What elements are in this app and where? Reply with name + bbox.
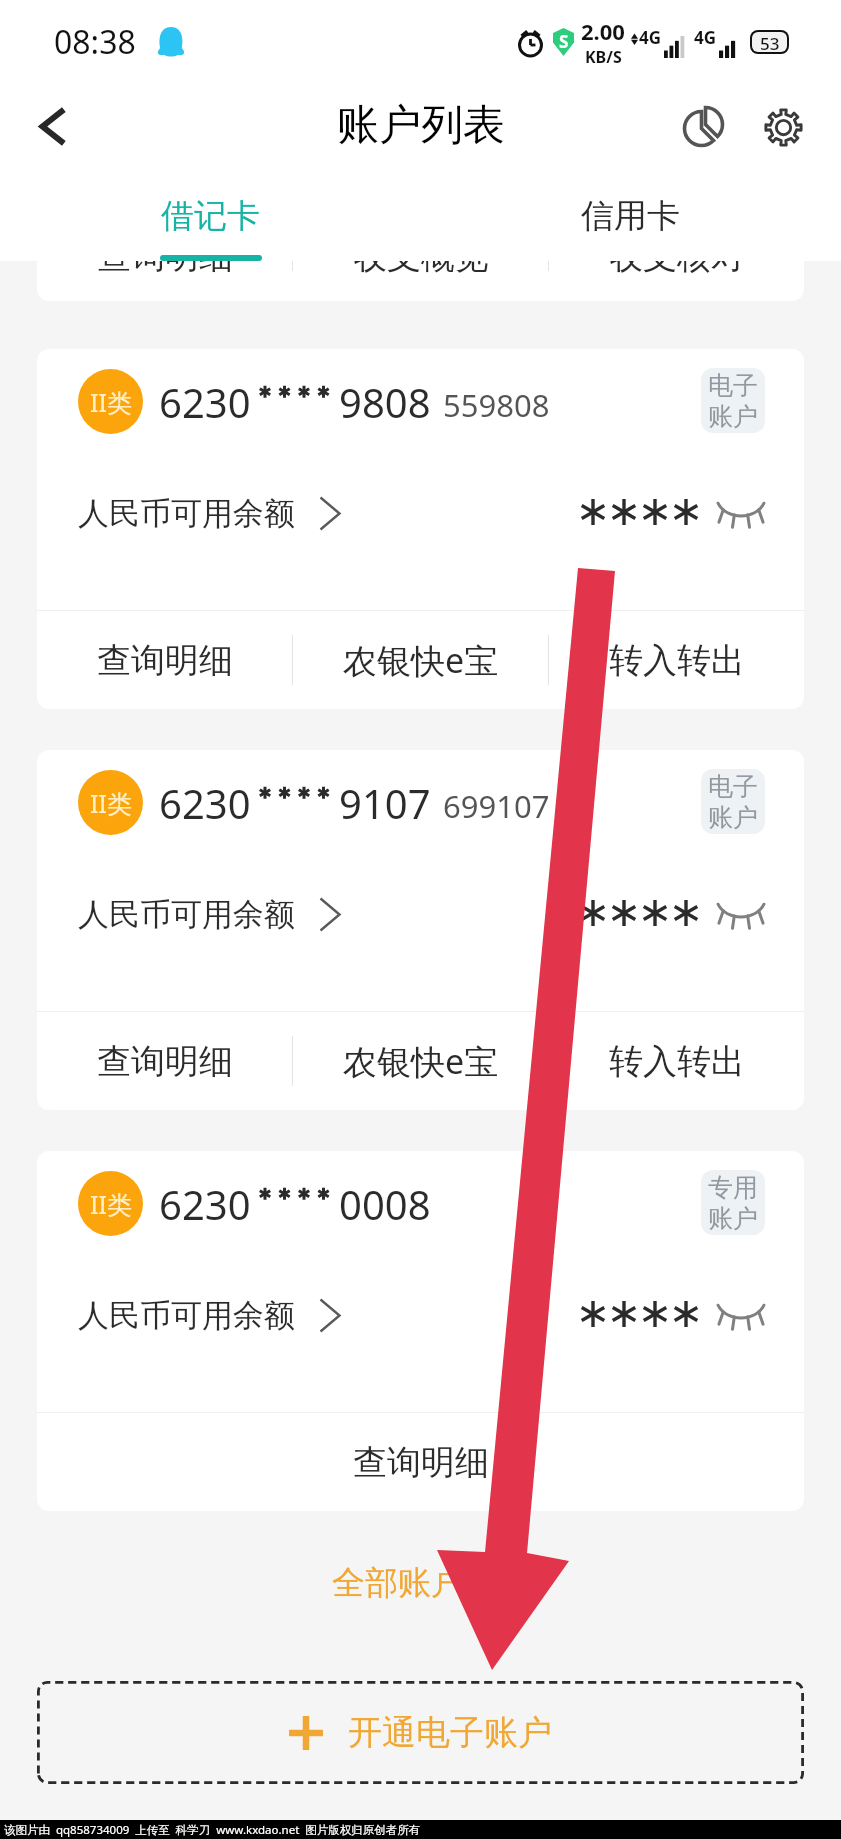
staticText: 专用	[708, 1172, 758, 1203]
staticText: KB/S	[585, 46, 622, 68]
staticText: 该图片由 qq858734009 上传至 科学刀 www.kxdao.net 图…	[4, 1822, 421, 1838]
staticText: 农银快e宝	[343, 1038, 499, 1084]
button[interactable]: 查询明细	[37, 261, 292, 301]
button[interactable]: Show balance	[577, 1294, 766, 1334]
button[interactable]: II类	[37, 1151, 804, 1511]
staticText: 账户	[708, 802, 758, 833]
staticText: 借记卡	[161, 195, 260, 237]
button[interactable]: 查询明细	[37, 1012, 292, 1110]
staticText: 4G	[694, 26, 717, 49]
staticText: II类	[90, 1187, 132, 1221]
button[interactable]: 农银快e宝	[293, 611, 548, 709]
button[interactable]: 借记卡	[0, 180, 420, 261]
staticText: 账户列表	[337, 99, 505, 152]
staticText: 农银快e宝	[343, 637, 499, 683]
staticText: 559808	[443, 384, 550, 426]
staticText: II类	[90, 786, 132, 820]
staticText: 9107	[339, 776, 431, 830]
staticText: 开通电子账户	[348, 1711, 552, 1754]
staticText: 转入转出	[609, 639, 745, 682]
staticText: 查询明细	[97, 261, 233, 275]
staticText: S	[559, 30, 569, 53]
staticText: 电子	[708, 370, 758, 401]
button[interactable]: II类	[37, 750, 804, 1110]
button[interactable]: 转入转出	[549, 1012, 804, 1110]
staticText: 2.00	[581, 16, 625, 46]
button[interactable]: 收支核对	[549, 261, 804, 301]
staticText: 08:38	[54, 20, 136, 64]
staticText: 9808	[339, 375, 431, 429]
button[interactable]: Show balance	[577, 492, 766, 532]
staticText: 收支核对	[609, 261, 745, 275]
staticText: 收支概览	[353, 261, 489, 275]
button[interactable]: 收支概览	[293, 261, 548, 301]
staticText: 全部账户	[332, 1562, 464, 1604]
staticText: II类	[90, 385, 132, 419]
button[interactable]: 人民币可用余额	[78, 1296, 341, 1335]
staticText: 53	[760, 32, 780, 52]
button[interactable]: 信用卡	[420, 180, 841, 261]
button[interactable]: 转入转出	[549, 611, 804, 709]
button[interactable]: 查询明细	[37, 1413, 804, 1511]
staticText: 4G	[639, 26, 662, 49]
staticText: 人民币可用余额	[78, 494, 295, 533]
button[interactable]: 人民币可用余额	[78, 895, 341, 934]
staticText: 6230	[159, 375, 251, 429]
staticText: 人民币可用余额	[78, 1296, 295, 1335]
staticText: 0008	[339, 1177, 431, 1231]
staticText: 人民币可用余额	[78, 895, 295, 934]
button[interactable]: 人民币可用余额	[78, 494, 341, 533]
staticText: 电子	[708, 771, 758, 802]
staticText: 转入转出	[609, 1040, 745, 1083]
staticText: 6230	[159, 1177, 251, 1231]
button[interactable]: 农银快e宝	[293, 1012, 548, 1110]
staticText: 信用卡	[581, 195, 680, 237]
button[interactable]: Show balance	[577, 893, 766, 933]
staticText: 账户	[708, 401, 758, 432]
staticText: 查询明细	[97, 639, 233, 682]
button[interactable]: 开通电子账户	[37, 1681, 804, 1784]
staticText: 查询明细	[353, 1441, 489, 1484]
staticText: 6230	[159, 776, 251, 830]
staticText: 账户	[708, 1203, 758, 1234]
button[interactable]: Back	[18, 92, 86, 160]
button[interactable]: II类	[37, 349, 804, 709]
staticText: 699107	[443, 785, 550, 827]
button[interactable]: Statistics	[674, 98, 732, 156]
button[interactable]: Settings	[754, 98, 812, 156]
staticText: 查询明细	[97, 1040, 233, 1083]
button[interactable]: 全部账户	[332, 1562, 490, 1604]
button[interactable]: 查询明细	[37, 611, 292, 709]
